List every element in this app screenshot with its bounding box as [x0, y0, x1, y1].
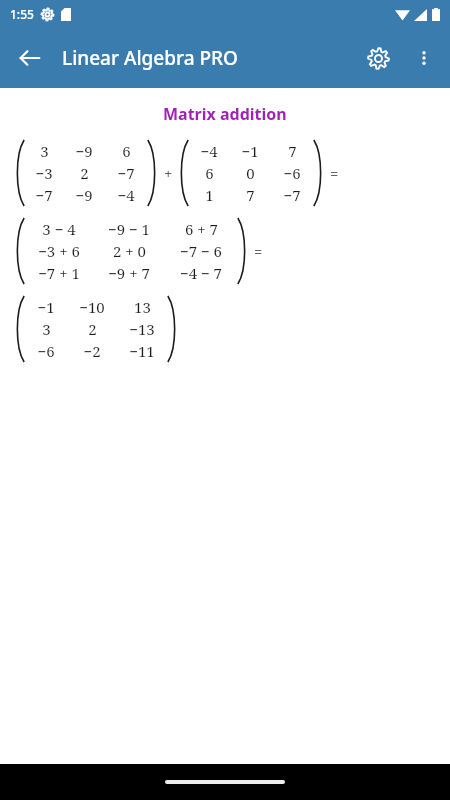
- staticText: −7: [35, 185, 53, 205]
- staticText: −7 + 1: [38, 263, 80, 283]
- staticText: 2 + 0: [113, 241, 146, 261]
- staticText: −1: [241, 141, 259, 161]
- staticText: 7: [246, 185, 255, 205]
- staticText: 6: [205, 163, 214, 183]
- button[interactable]: Settings: [354, 34, 402, 82]
- staticText: −6: [283, 163, 301, 183]
- staticText: 6 + 7: [185, 219, 218, 239]
- staticText: −1: [37, 297, 55, 317]
- staticText: 7: [288, 141, 297, 161]
- staticText: −7: [283, 185, 301, 205]
- staticText: −3 + 6: [38, 241, 80, 261]
- staticText: −9: [75, 185, 93, 205]
- button[interactable]: Back: [6, 34, 54, 82]
- staticText: Linear Algebra PRO: [62, 45, 238, 71]
- staticText: 6: [122, 141, 131, 161]
- staticText: 1:55: [10, 6, 34, 22]
- staticText: 0: [246, 163, 255, 183]
- staticText: −2: [83, 341, 101, 361]
- staticText: −9 + 7: [108, 263, 150, 283]
- staticText: =: [330, 163, 339, 183]
- staticText: −6: [37, 341, 55, 361]
- staticText: +: [164, 163, 173, 183]
- button[interactable]: More options: [402, 36, 446, 80]
- staticText: −7: [117, 163, 135, 183]
- staticText: −10: [79, 297, 105, 317]
- staticText: −4 − 7: [180, 263, 222, 283]
- staticText: 2: [80, 163, 89, 183]
- staticText: =: [254, 241, 263, 261]
- staticText: −9: [75, 141, 93, 161]
- staticText: 1: [205, 185, 214, 205]
- staticText: 2: [88, 319, 97, 339]
- staticText: 13: [134, 297, 151, 317]
- staticText: −11: [129, 341, 155, 361]
- staticText: −4: [117, 185, 135, 205]
- staticText: −9 − 1: [108, 219, 150, 239]
- staticText: 3: [40, 141, 49, 161]
- staticText: −4: [200, 141, 218, 161]
- staticText: Matrix addition: [163, 103, 287, 125]
- staticText: −13: [129, 319, 155, 339]
- staticText: 3 − 4: [42, 219, 76, 239]
- staticText: −3: [35, 163, 53, 183]
- staticText: 3: [42, 319, 51, 339]
- staticText: −7 − 6: [180, 241, 222, 261]
